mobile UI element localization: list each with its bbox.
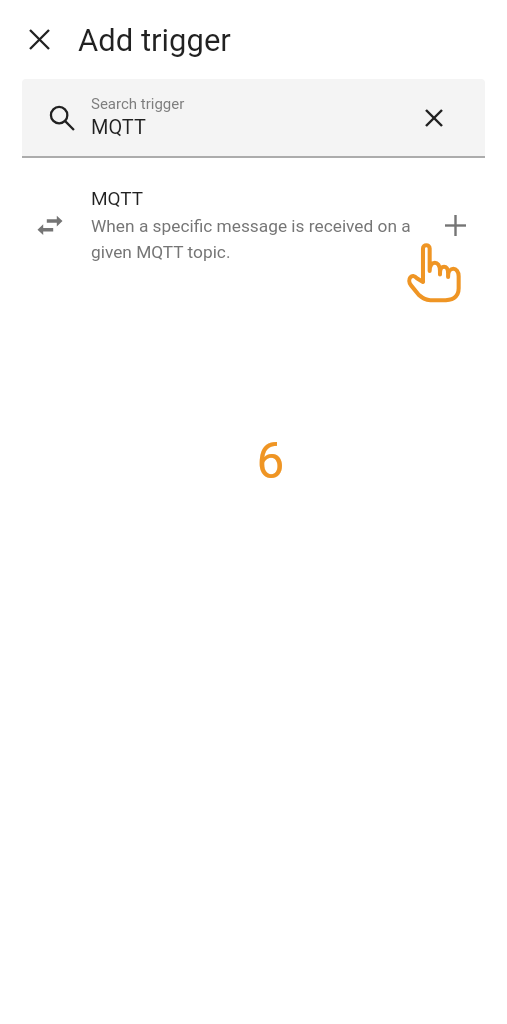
button[interactable]: MQTT: [0, 179, 507, 270]
staticText: Add trigger: [78, 22, 231, 58]
button[interactable]: Add: [433, 203, 477, 247]
staticText: Search trigger: [91, 95, 185, 113]
staticText: When a specific message is received on a…: [91, 216, 433, 262]
staticText: 6: [17, 432, 507, 490]
button[interactable]: Close: [18, 18, 60, 60]
button[interactable]: Search trigger: [22, 79, 485, 158]
staticText: MQTT: [91, 187, 144, 209]
button[interactable]: Clear search: [414, 98, 454, 138]
staticText: MQTT: [91, 115, 146, 138]
